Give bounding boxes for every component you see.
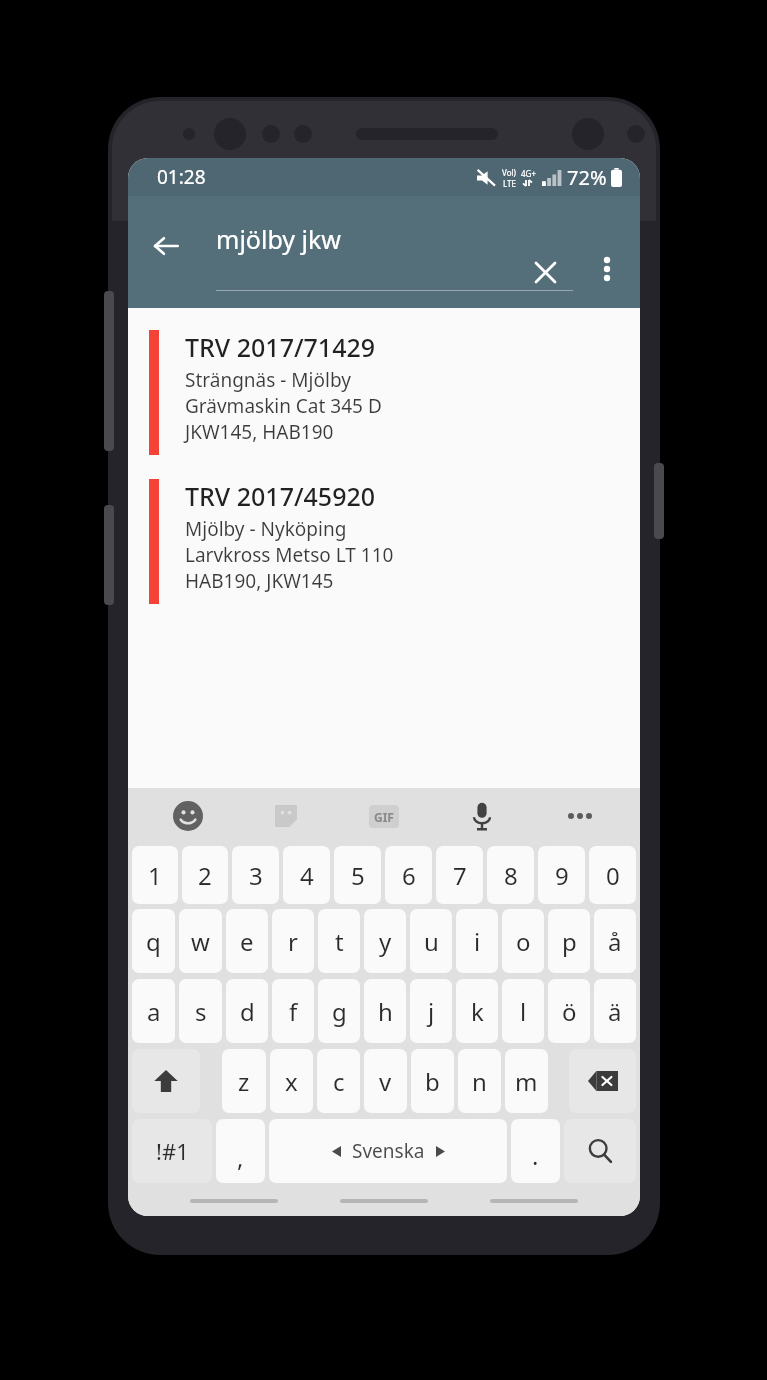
button[interactable]: y <box>364 909 406 973</box>
staticText: o <box>516 925 531 958</box>
button[interactable]: z <box>222 1049 266 1113</box>
staticText: Grävmaskin Cat 345 D <box>185 393 382 419</box>
button[interactable]: f <box>272 979 314 1043</box>
button[interactable]: h <box>364 979 406 1043</box>
staticText: Larvkross Metso LT 110 <box>185 542 394 568</box>
button[interactable]: c <box>317 1049 360 1113</box>
button[interactable]: !#1 <box>132 1119 212 1183</box>
button[interactable]: å <box>594 909 636 973</box>
button[interactable]: . <box>511 1119 560 1183</box>
staticText: i <box>474 925 481 958</box>
button[interactable]: i <box>456 909 498 973</box>
button[interactable]: p <box>548 909 590 973</box>
button[interactable]: u <box>410 909 452 973</box>
button[interactable]: Shift <box>132 1049 200 1113</box>
staticText: ö <box>562 995 577 1028</box>
button[interactable]: m <box>505 1049 548 1113</box>
staticText: k <box>471 995 484 1028</box>
button[interactable]: r <box>272 909 314 973</box>
staticText: e <box>240 925 254 958</box>
staticText: , <box>237 1141 244 1174</box>
staticText: GIF <box>374 809 394 825</box>
button[interactable]: 4 <box>283 846 330 904</box>
button[interactable]: 5 <box>334 846 381 904</box>
button[interactable]: w <box>179 909 222 973</box>
button[interactable]: Voice input <box>462 796 502 836</box>
button[interactable]: 0 <box>589 846 636 904</box>
staticText: !#1 <box>156 1136 189 1166</box>
staticText: 3 <box>249 859 263 892</box>
staticText: 4 <box>300 859 314 892</box>
button[interactable]: x <box>270 1049 313 1113</box>
button[interactable]: 1 <box>132 846 178 904</box>
button[interactable]: Backspace <box>569 1049 636 1113</box>
button[interactable]: mjölby jkw <box>216 214 456 284</box>
button[interactable]: 7 <box>436 846 483 904</box>
staticText: 5 <box>351 859 365 892</box>
button[interactable]: ö <box>548 979 590 1043</box>
button[interactable]: Back <box>138 218 194 274</box>
staticText: r <box>288 925 298 958</box>
staticText: s <box>195 995 207 1028</box>
staticText: d <box>240 995 255 1028</box>
button[interactable]: 9 <box>538 846 585 904</box>
staticText: t <box>335 925 344 958</box>
button[interactable]: j <box>410 979 452 1043</box>
staticText: Vol) <box>502 167 516 178</box>
button[interactable]: v <box>364 1049 407 1113</box>
staticText: HAB190, JKW145 <box>185 568 334 594</box>
button[interactable]: Emoji <box>168 796 208 836</box>
button[interactable]: k <box>456 979 498 1043</box>
button[interactable]: n <box>458 1049 501 1113</box>
staticText: b <box>425 1065 440 1098</box>
button[interactable]: Clear query <box>517 244 573 300</box>
staticText: 0 <box>606 859 620 892</box>
staticText: TRV 2017/45920 <box>185 479 376 513</box>
button[interactable]: TRV 2017/45920 <box>128 479 640 604</box>
button[interactable]: o <box>502 909 544 973</box>
button[interactable]: Space, Svenska <box>269 1119 507 1183</box>
button[interactable]: l <box>502 979 544 1043</box>
staticText: å <box>608 925 622 958</box>
button[interactable]: , <box>216 1119 265 1183</box>
button[interactable]: TRV 2017/71429 <box>128 330 640 455</box>
button[interactable]: 6 <box>385 846 432 904</box>
staticText: LTE <box>503 178 516 189</box>
button[interactable]: 8 <box>487 846 534 904</box>
staticText: h <box>378 995 393 1028</box>
staticText: Mjölby - Nyköping <box>185 516 347 542</box>
staticText: x <box>285 1065 298 1098</box>
staticText: f <box>289 995 298 1028</box>
button[interactable]: GIF <box>364 796 404 836</box>
button[interactable]: d <box>226 979 268 1043</box>
staticText: u <box>424 925 439 958</box>
staticText: 6 <box>402 859 416 892</box>
button[interactable]: More keyboard options <box>560 796 600 836</box>
staticText: JKW145, HAB190 <box>185 419 334 445</box>
button[interactable]: t <box>318 909 360 973</box>
button[interactable]: 2 <box>182 846 228 904</box>
staticText: Svenska <box>352 1138 425 1164</box>
staticText: TRV 2017/71429 <box>185 330 376 364</box>
staticText: g <box>332 995 347 1028</box>
button[interactable]: a <box>132 979 175 1043</box>
staticText: v <box>379 1065 392 1098</box>
button[interactable]: ä <box>594 979 636 1043</box>
button[interactable]: g <box>318 979 360 1043</box>
button[interactable]: e <box>226 909 268 973</box>
staticText: ä <box>608 995 622 1028</box>
staticText: 2 <box>198 859 212 892</box>
button[interactable]: 3 <box>232 846 279 904</box>
button[interactable]: s <box>179 979 222 1043</box>
staticText: j <box>428 995 435 1028</box>
staticText: 1 <box>148 859 162 892</box>
staticText: 4G+ <box>521 168 536 179</box>
staticText: a <box>147 995 161 1028</box>
button[interactable]: Search <box>564 1119 636 1183</box>
button[interactable]: q <box>132 909 175 973</box>
button[interactable]: Stickers <box>266 796 306 836</box>
staticText: y <box>379 925 392 958</box>
button[interactable]: b <box>411 1049 454 1113</box>
button[interactable]: More options <box>582 244 632 294</box>
staticText: z <box>238 1065 250 1098</box>
